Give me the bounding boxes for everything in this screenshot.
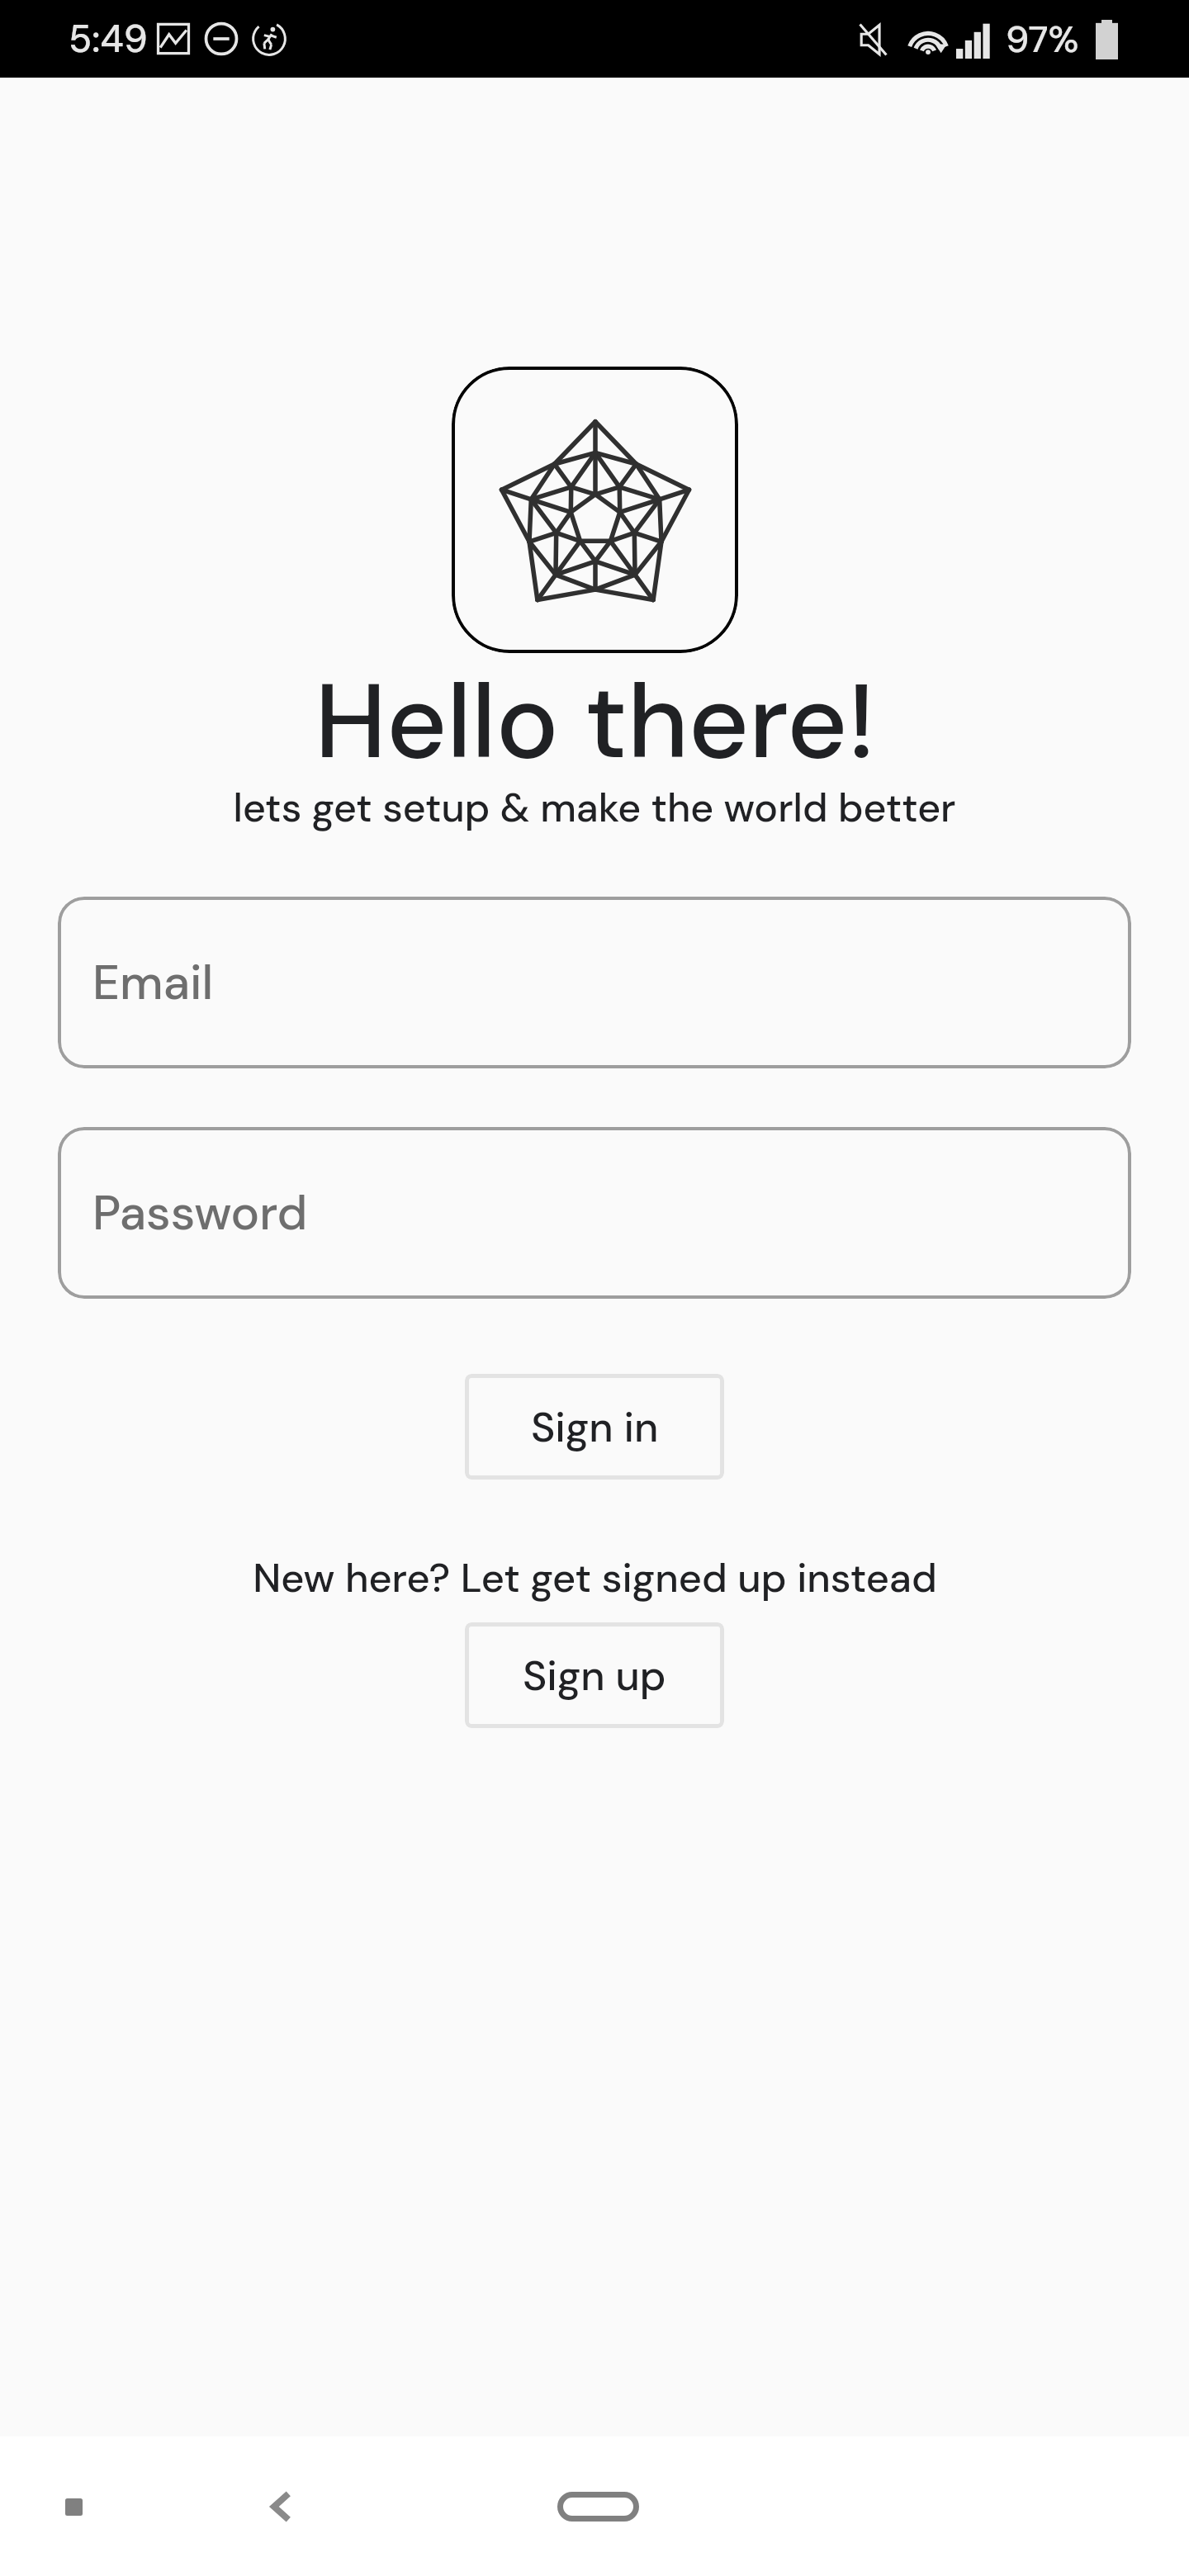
staticText: 5:49: [69, 14, 148, 64]
button[interactable]: Home: [532, 2479, 664, 2534]
button[interactable]: Recent apps: [47, 2480, 100, 2533]
staticText: 97%: [1006, 15, 1079, 64]
staticText: Sign up: [523, 1649, 666, 1702]
button[interactable]: Back: [252, 2477, 311, 2536]
staticText: New here? Let get signed up instead: [253, 1552, 937, 1604]
button[interactable]: Sign up: [465, 1622, 724, 1728]
staticText: Email: [92, 951, 214, 1014]
button[interactable]: App logo: [452, 367, 738, 653]
button[interactable]: Sign in: [465, 1374, 724, 1480]
staticText: lets get setup & make the world better: [233, 782, 956, 834]
button[interactable]: Email: [58, 897, 1131, 1068]
button[interactable]: Password: [58, 1127, 1131, 1299]
staticText: Sign in: [531, 1400, 659, 1454]
staticText: Hello there!: [315, 654, 875, 789]
staticText: Password: [92, 1181, 308, 1244]
